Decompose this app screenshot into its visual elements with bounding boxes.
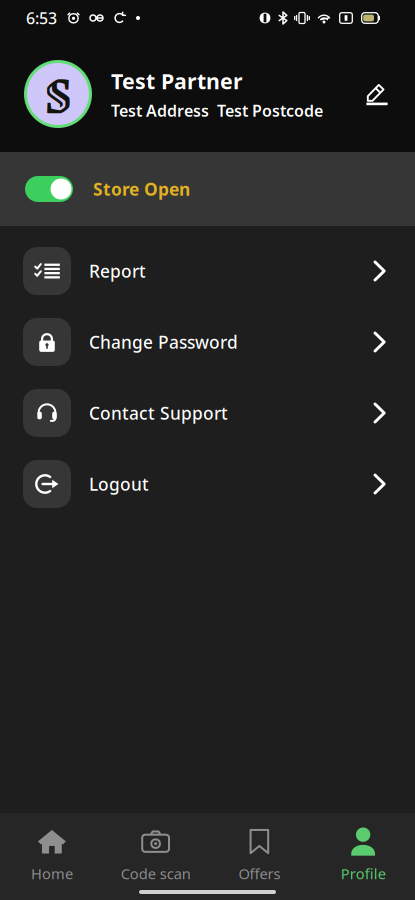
staticText: Change Password: [89, 330, 238, 353]
button[interactable]: Offers: [207, 831, 311, 881]
button[interactable]: Edit profile: [355, 72, 399, 116]
button[interactable]: Store open: [25, 176, 73, 202]
button[interactable]: Home: [0, 831, 104, 881]
staticText: Report: [89, 259, 146, 282]
staticText: Test Address Test Postcode: [111, 100, 323, 121]
button[interactable]: Contact Support: [0, 389, 415, 437]
staticText: Profile: [341, 864, 386, 883]
staticText: Home: [31, 864, 73, 883]
staticText: Offers: [238, 864, 280, 883]
staticText: Code scan: [121, 864, 191, 883]
button[interactable]: Code scan: [104, 831, 208, 881]
button[interactable]: Change Password: [0, 318, 415, 366]
staticText: 6:53: [26, 7, 57, 29]
staticText: Store Open: [93, 177, 190, 200]
staticText: Logout: [89, 472, 149, 495]
staticText: Contact Support: [89, 401, 228, 424]
button[interactable]: Report: [0, 247, 415, 295]
staticText: Test Partner: [111, 67, 243, 95]
staticText: S: [44, 54, 71, 133]
button[interactable]: Profile: [311, 831, 415, 881]
button[interactable]: Logout: [0, 460, 415, 508]
